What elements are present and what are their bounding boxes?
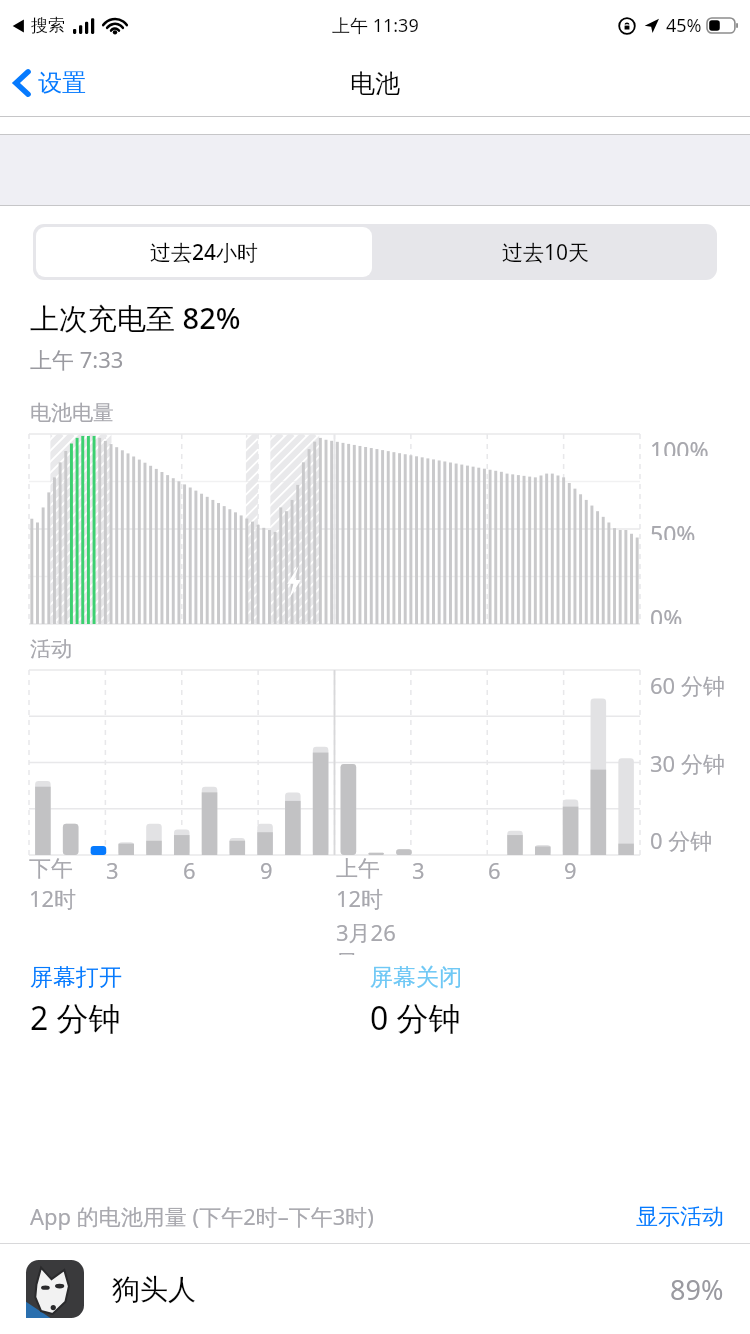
staticText: 3 <box>106 855 119 885</box>
staticText: 45% <box>666 13 702 38</box>
staticText: 下午 <box>29 855 73 883</box>
button[interactable]: 狗头人 App 图标 <box>0 1244 750 1334</box>
staticText: 上午 7:33 <box>30 344 124 374</box>
staticText: 12时 <box>336 883 384 913</box>
staticText: 狗头人 <box>112 1272 196 1307</box>
staticText: 电池 <box>350 68 400 99</box>
staticText: 9 <box>564 855 577 885</box>
staticText: 上午 11:39 <box>332 13 419 38</box>
staticText: 搜索 <box>31 15 65 36</box>
staticText: 6 <box>183 855 196 885</box>
staticText: 12时 <box>29 883 77 913</box>
staticText: 60 分钟 <box>650 670 725 700</box>
staticText: 过去24小时 <box>150 238 259 267</box>
staticText: 3 <box>412 855 425 885</box>
staticText: 6 <box>488 855 501 885</box>
staticText: 显示活动 <box>636 1203 724 1231</box>
staticText: 3月26日 <box>336 917 412 955</box>
staticText: 50% <box>650 518 696 540</box>
staticText: 设置 <box>38 68 86 98</box>
staticText: 上次充电至 82% <box>30 298 241 338</box>
staticText: 屏幕打开 <box>30 963 122 992</box>
staticText: 100% <box>650 434 709 456</box>
other: 狗头人 App 图标 <box>26 1260 84 1318</box>
staticText: 30 分钟 <box>650 748 725 778</box>
staticText: 0% <box>650 602 683 624</box>
staticText: 0 分钟 <box>370 996 461 1040</box>
button[interactable]: 显示活动 <box>636 1203 724 1231</box>
staticText: 屏幕关闭 <box>370 963 462 992</box>
staticText: 过去10天 <box>502 238 590 267</box>
staticText: App 的电池用量 (下午2时–下午3时) <box>30 1201 374 1231</box>
staticText: 89% <box>670 1271 724 1308</box>
button[interactable]: 设置 <box>0 60 100 106</box>
staticText: 2 分钟 <box>30 996 121 1040</box>
staticText: 9 <box>260 855 273 885</box>
button[interactable]: 过去24小时 <box>36 227 372 277</box>
staticText: 0 分钟 <box>650 825 713 855</box>
staticText: 电池电量 <box>30 400 114 426</box>
staticText: 上午 <box>336 855 380 883</box>
button[interactable]: 过去10天 <box>375 224 717 280</box>
staticText: 活动 <box>30 636 72 662</box>
